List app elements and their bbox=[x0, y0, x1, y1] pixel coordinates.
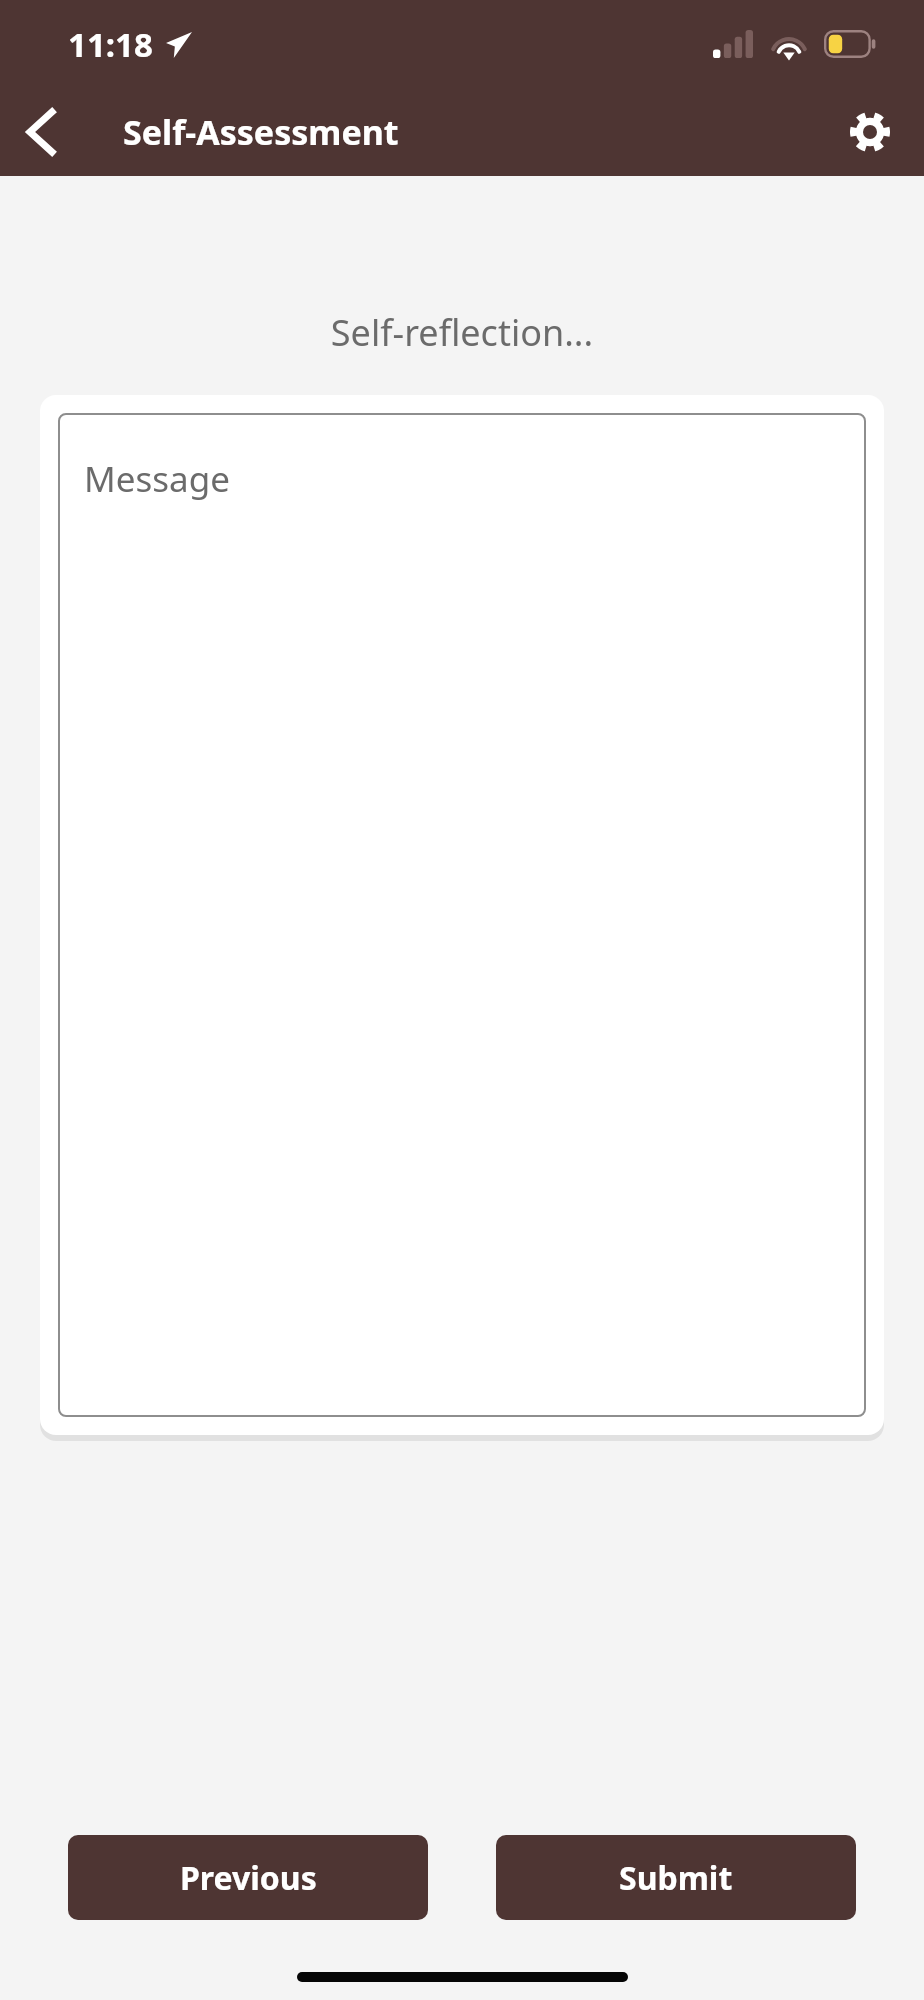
button[interactable]: Settings bbox=[838, 100, 902, 164]
staticText: Submit bbox=[619, 1856, 733, 1900]
button[interactable]: Message bbox=[58, 413, 866, 1417]
staticText: Self-Assessment bbox=[123, 109, 399, 155]
button[interactable]: Back bbox=[10, 101, 72, 163]
staticText: Message bbox=[84, 455, 230, 503]
staticText: 11:18 bbox=[68, 22, 153, 67]
button[interactable]: Previous bbox=[68, 1835, 428, 1920]
staticText: Previous bbox=[180, 1856, 317, 1900]
button[interactable]: Submit bbox=[496, 1835, 856, 1920]
staticText: Self-reflection... bbox=[0, 308, 924, 357]
